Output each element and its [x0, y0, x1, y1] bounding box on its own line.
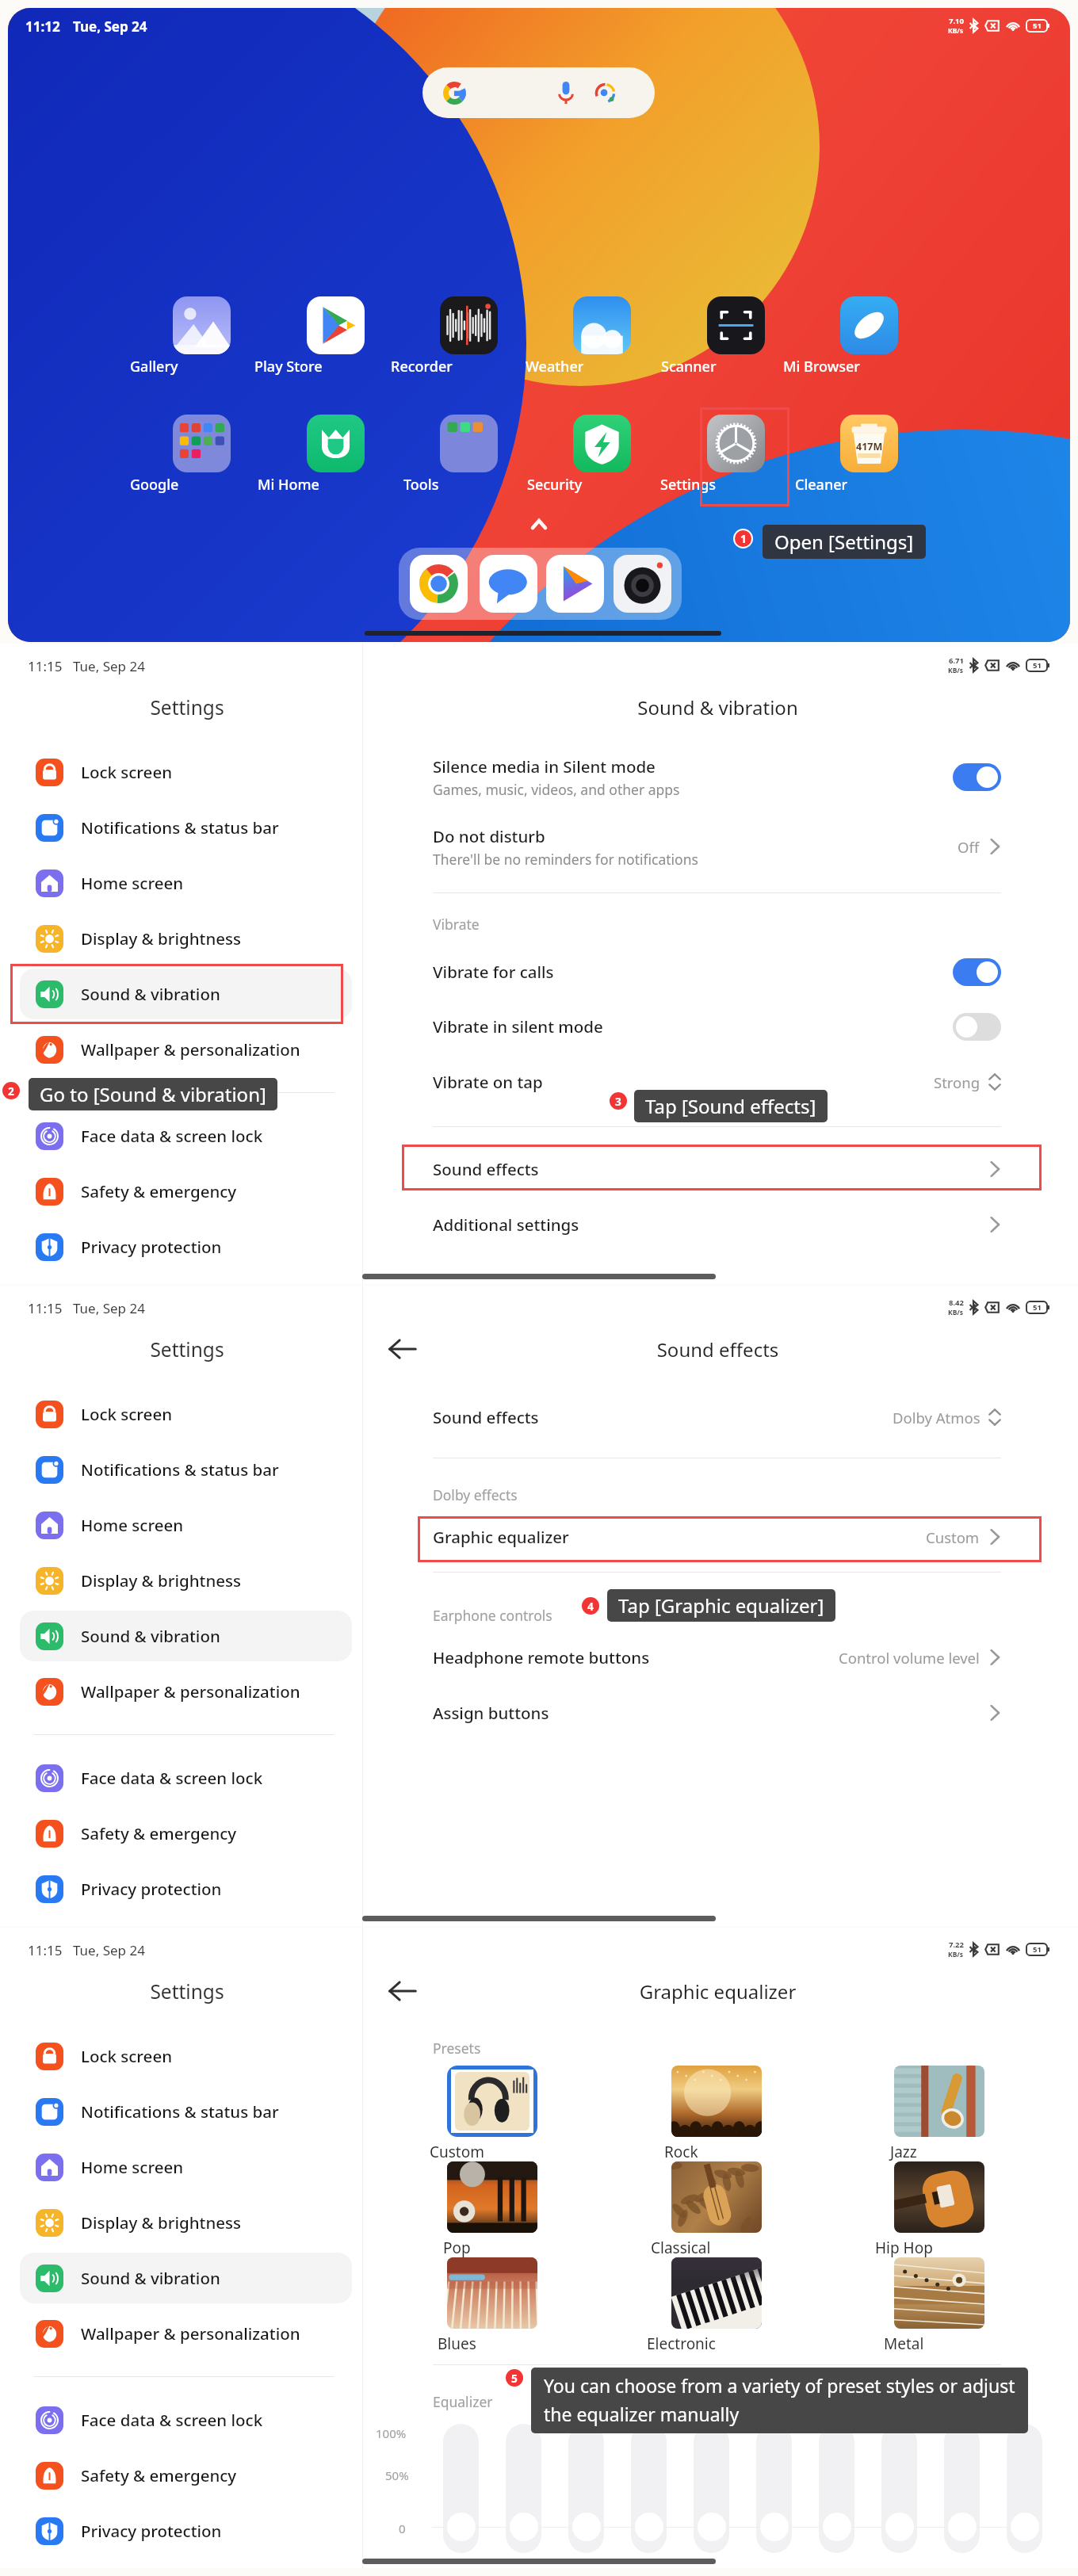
button[interactable]: Sound & vibration	[20, 969, 352, 1019]
button[interactable]: Wallpaper & personalization	[20, 2308, 352, 2359]
staticText: Strong	[934, 1072, 981, 1092]
button[interactable]: Sound & vibration	[20, 2253, 352, 2303]
button[interactable]: Lock screen	[20, 747, 352, 797]
button[interactable]: Recorder	[440, 296, 498, 384]
button[interactable]: Face data & screen lock	[20, 1110, 352, 1161]
button[interactable]: Face data & screen lock	[20, 1752, 352, 1803]
button[interactable]: Privacy protection	[20, 1221, 352, 1272]
button[interactable]: Hip Hop	[894, 2161, 984, 2255]
button[interactable]: Band 6	[760, 2513, 789, 2541]
button[interactable]: Home screen	[20, 2142, 352, 2192]
staticText: Safety & emergency	[81, 1180, 237, 1202]
button[interactable]: Home screen	[20, 1500, 352, 1550]
staticText: Off	[958, 837, 980, 857]
staticText: Notifications & status bar	[81, 2100, 279, 2123]
button[interactable]: Band 7	[823, 2513, 851, 2541]
button[interactable]: Band 5	[698, 2513, 726, 2541]
button[interactable]: Google search	[422, 67, 655, 118]
button[interactable]: Face data & screen lock	[20, 2394, 352, 2445]
button[interactable]: Jazz	[894, 2066, 984, 2159]
button[interactable]: Notifications & status bar	[20, 802, 352, 853]
button[interactable]: Assign buttons	[362, 1685, 1078, 1741]
button[interactable]: Sound effects	[362, 1389, 1078, 1445]
button[interactable]: Safety & emergency	[20, 1808, 352, 1859]
staticText: KB/s	[948, 666, 964, 675]
button[interactable]: Camera	[614, 555, 671, 613]
staticText: Electronic	[647, 2333, 716, 2354]
staticText: Notifications & status bar	[81, 1458, 279, 1481]
staticText: Control volume level	[839, 1648, 980, 1668]
button[interactable]: Pop	[447, 2161, 537, 2255]
button[interactable]: Vibrate for calls	[362, 944, 1078, 999]
button[interactable]: Vibrate on tap	[362, 1054, 1078, 1110]
button[interactable]: Band 3	[572, 2513, 601, 2541]
staticText: Lock screen	[81, 2045, 173, 2067]
button[interactable]: Privacy protection	[20, 2505, 352, 2556]
button[interactable]: Lock screen	[20, 1389, 352, 1439]
staticText: 51	[1033, 660, 1042, 671]
button[interactable]: Custom	[447, 2066, 537, 2159]
staticText: Face data & screen lock	[81, 1125, 263, 1147]
button[interactable]: Wallpaper & personalization	[20, 1666, 352, 1717]
staticText: Vibrate	[433, 915, 480, 934]
staticText: Recorder	[391, 357, 453, 376]
button[interactable]: Google	[173, 415, 231, 502]
button[interactable]: Headphone remote buttons	[362, 1630, 1078, 1685]
button[interactable]: Scanner	[707, 296, 765, 384]
button[interactable]: Toggle	[953, 958, 1001, 986]
button[interactable]: Tools	[440, 415, 498, 502]
button[interactable]: Toggle	[953, 763, 1001, 791]
staticText: Display & brightness	[81, 1569, 241, 1592]
button[interactable]: Display & brightness	[20, 1555, 352, 1606]
button[interactable]: Gallery	[173, 296, 231, 384]
button[interactable]: Band 9	[948, 2513, 977, 2541]
button[interactable]: Do not disturb	[362, 819, 1078, 874]
button[interactable]: Play Store	[307, 296, 365, 384]
button[interactable]: Privacy protection	[20, 1863, 352, 1914]
button[interactable]: Mi Browser	[840, 296, 898, 384]
button[interactable]: Electronic	[671, 2257, 762, 2351]
button[interactable]: Settings	[707, 415, 765, 502]
button[interactable]: Safety & emergency	[20, 1166, 352, 1217]
button[interactable]: Security	[573, 415, 631, 502]
staticText: Display & brightness	[81, 927, 241, 950]
button[interactable]: Mi Home	[307, 415, 365, 502]
button[interactable]: Weather	[573, 296, 631, 384]
button[interactable]: Back	[384, 1972, 422, 2010]
button[interactable]: Band 1	[447, 2513, 476, 2541]
button[interactable]: Classical	[671, 2161, 762, 2255]
staticText: Wallpaper & personalization	[81, 2322, 300, 2345]
button[interactable]: Display & brightness	[20, 2197, 352, 2248]
staticText: Earphone controls	[433, 1606, 552, 1625]
button[interactable]: Sound & vibration	[20, 1611, 352, 1661]
button[interactable]: Additional settings	[362, 1197, 1078, 1252]
button[interactable]: Sound effects	[362, 1141, 1078, 1197]
button[interactable]: Graphic equalizer	[362, 1509, 1078, 1565]
staticText: Do not disturb	[433, 825, 545, 847]
button[interactable]: Band 8	[885, 2513, 914, 2541]
button[interactable]: Toggle	[953, 1013, 1001, 1041]
button[interactable]: Blues	[447, 2257, 537, 2351]
button[interactable]: Band 10	[1011, 2513, 1039, 2541]
staticText: Hip Hop	[875, 2238, 933, 2258]
staticText: Safety & emergency	[81, 2464, 237, 2486]
button[interactable]: Wallpaper & personalization	[20, 1024, 352, 1075]
button[interactable]: Back	[384, 1330, 422, 1368]
button[interactable]: Metal	[894, 2257, 984, 2351]
button[interactable]: Chrome	[410, 555, 468, 613]
button[interactable]: Vibrate in silent mode	[362, 999, 1078, 1054]
staticText: Wallpaper & personalization	[81, 1680, 300, 1703]
button[interactable]: Play Store	[546, 555, 604, 613]
button[interactable]: Silence media in Silent mode	[362, 749, 1078, 805]
button[interactable]: Band 4	[635, 2513, 663, 2541]
button[interactable]: Rock	[671, 2066, 762, 2159]
button[interactable]: Notifications & status bar	[20, 1444, 352, 1495]
button[interactable]: Band 2	[510, 2513, 538, 2541]
button[interactable]: Display & brightness	[20, 913, 352, 964]
button[interactable]: Lock screen	[20, 2031, 352, 2081]
button[interactable]: Cleaner	[840, 415, 898, 502]
button[interactable]: Messages	[480, 555, 537, 613]
button[interactable]: Home screen	[20, 858, 352, 908]
button[interactable]: Notifications & status bar	[20, 2086, 352, 2137]
button[interactable]: Safety & emergency	[20, 2450, 352, 2501]
